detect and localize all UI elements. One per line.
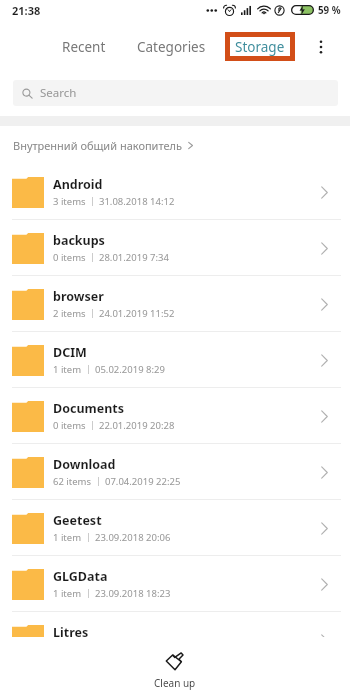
staticText: 2 items bbox=[53, 307, 86, 320]
button[interactable]: Android bbox=[0, 164, 350, 220]
staticText: 23.09.2018 20:06 bbox=[95, 531, 171, 544]
staticText: 59 % bbox=[318, 4, 341, 17]
staticText: Storage bbox=[235, 38, 285, 56]
button[interactable]: Внутренний общий накопитель bbox=[0, 126, 350, 164]
staticText: Search bbox=[40, 85, 77, 101]
staticText: 1 item bbox=[53, 531, 82, 544]
button[interactable]: Search bbox=[13, 80, 338, 106]
staticText: 0 items bbox=[53, 419, 86, 432]
staticText: 24.01.2019 11:52 bbox=[99, 307, 175, 320]
button[interactable]: Categories bbox=[131, 32, 212, 62]
staticText: 23.09.2018 18:23 bbox=[95, 587, 171, 600]
button[interactable]: Documents bbox=[0, 388, 350, 444]
staticText: 07.04.2019 22:25 bbox=[105, 475, 181, 488]
staticText: 21:38 bbox=[12, 3, 41, 18]
staticText: Clean up bbox=[154, 676, 196, 690]
staticText: 22.01.2019 20:28 bbox=[99, 419, 175, 432]
button[interactable]: Geetest bbox=[0, 500, 350, 556]
button[interactable]: Litres bbox=[0, 612, 350, 637]
staticText: 1 item bbox=[53, 587, 82, 600]
button[interactable]: More options bbox=[308, 31, 334, 63]
button[interactable]: backups bbox=[0, 220, 350, 276]
staticText: Recent bbox=[62, 38, 106, 56]
button[interactable]: DCIM bbox=[0, 332, 350, 388]
staticText: backups bbox=[53, 232, 105, 249]
button[interactable]: Clean up bbox=[130, 645, 220, 695]
staticText: 62 items bbox=[53, 475, 92, 488]
button[interactable]: Storage bbox=[225, 32, 295, 61]
staticText: 0 items bbox=[53, 251, 86, 264]
button[interactable]: GLGData bbox=[0, 556, 350, 612]
staticText: Внутренний общий накопитель bbox=[13, 138, 182, 153]
staticText: Android bbox=[53, 176, 103, 193]
button[interactable]: Recent bbox=[56, 32, 112, 62]
staticText: 1 item bbox=[53, 363, 82, 376]
button[interactable]: Download bbox=[0, 444, 350, 500]
staticText: GLGData bbox=[53, 568, 108, 585]
button[interactable]: browser bbox=[0, 276, 350, 332]
staticText: Litres bbox=[53, 624, 89, 637]
staticText: Download bbox=[53, 456, 116, 473]
staticText: browser bbox=[53, 288, 104, 305]
staticText: 3 items bbox=[53, 195, 86, 208]
staticText: DCIM bbox=[53, 344, 87, 361]
staticText: 31.08.2018 14:12 bbox=[99, 195, 175, 208]
staticText: Geetest bbox=[53, 512, 102, 529]
staticText: 05.02.2019 8:29 bbox=[95, 363, 165, 376]
staticText: Documents bbox=[53, 400, 125, 417]
staticText: 28.01.2019 7:34 bbox=[99, 251, 169, 264]
staticText: Categories bbox=[137, 38, 206, 56]
